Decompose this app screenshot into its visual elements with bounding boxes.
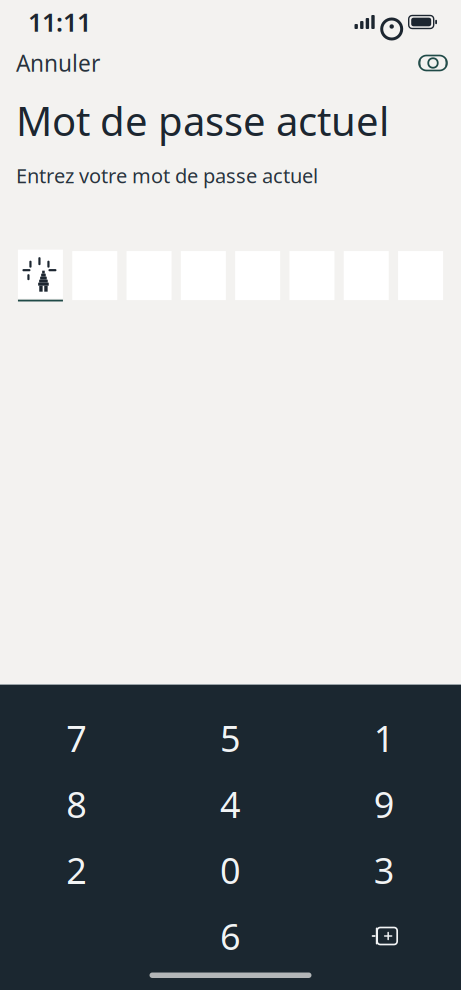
staticText: 9 [374, 780, 395, 828]
button[interactable]: 0 [154, 837, 307, 903]
staticText: 4 [220, 780, 241, 828]
button[interactable]: 2 [0, 837, 154, 903]
button[interactable]: Supprimer [307, 903, 461, 969]
button[interactable]: 3 [307, 837, 461, 903]
staticText: 2 [66, 846, 87, 894]
button[interactable]: Chiffre 1 [18, 250, 63, 301]
staticText: Annuler [16, 48, 100, 78]
staticText: 0 [220, 846, 241, 894]
staticText: 7 [66, 714, 87, 762]
button[interactable]: Annuler [12, 42, 104, 84]
staticText: Entrez votre mot de passe actuel [16, 162, 318, 189]
button[interactable]: 8 [0, 771, 154, 837]
button[interactable]: 9 [307, 771, 461, 837]
button[interactable]: 5 [154, 705, 307, 771]
button[interactable]: 6 [154, 903, 307, 969]
staticText: 6 [220, 912, 241, 960]
staticText: 5 [220, 714, 241, 762]
staticText: 8 [66, 780, 87, 828]
staticText: 1 [374, 714, 395, 762]
button[interactable]: Afficher le mot de passe [413, 46, 453, 80]
button[interactable]: 7 [0, 705, 154, 771]
staticText: Mot de passe actuel [16, 94, 389, 147]
button[interactable]: 4 [154, 771, 307, 837]
button[interactable]: 1 [307, 705, 461, 771]
staticText: 3 [374, 846, 395, 894]
staticText: 11:11 [28, 5, 91, 39]
